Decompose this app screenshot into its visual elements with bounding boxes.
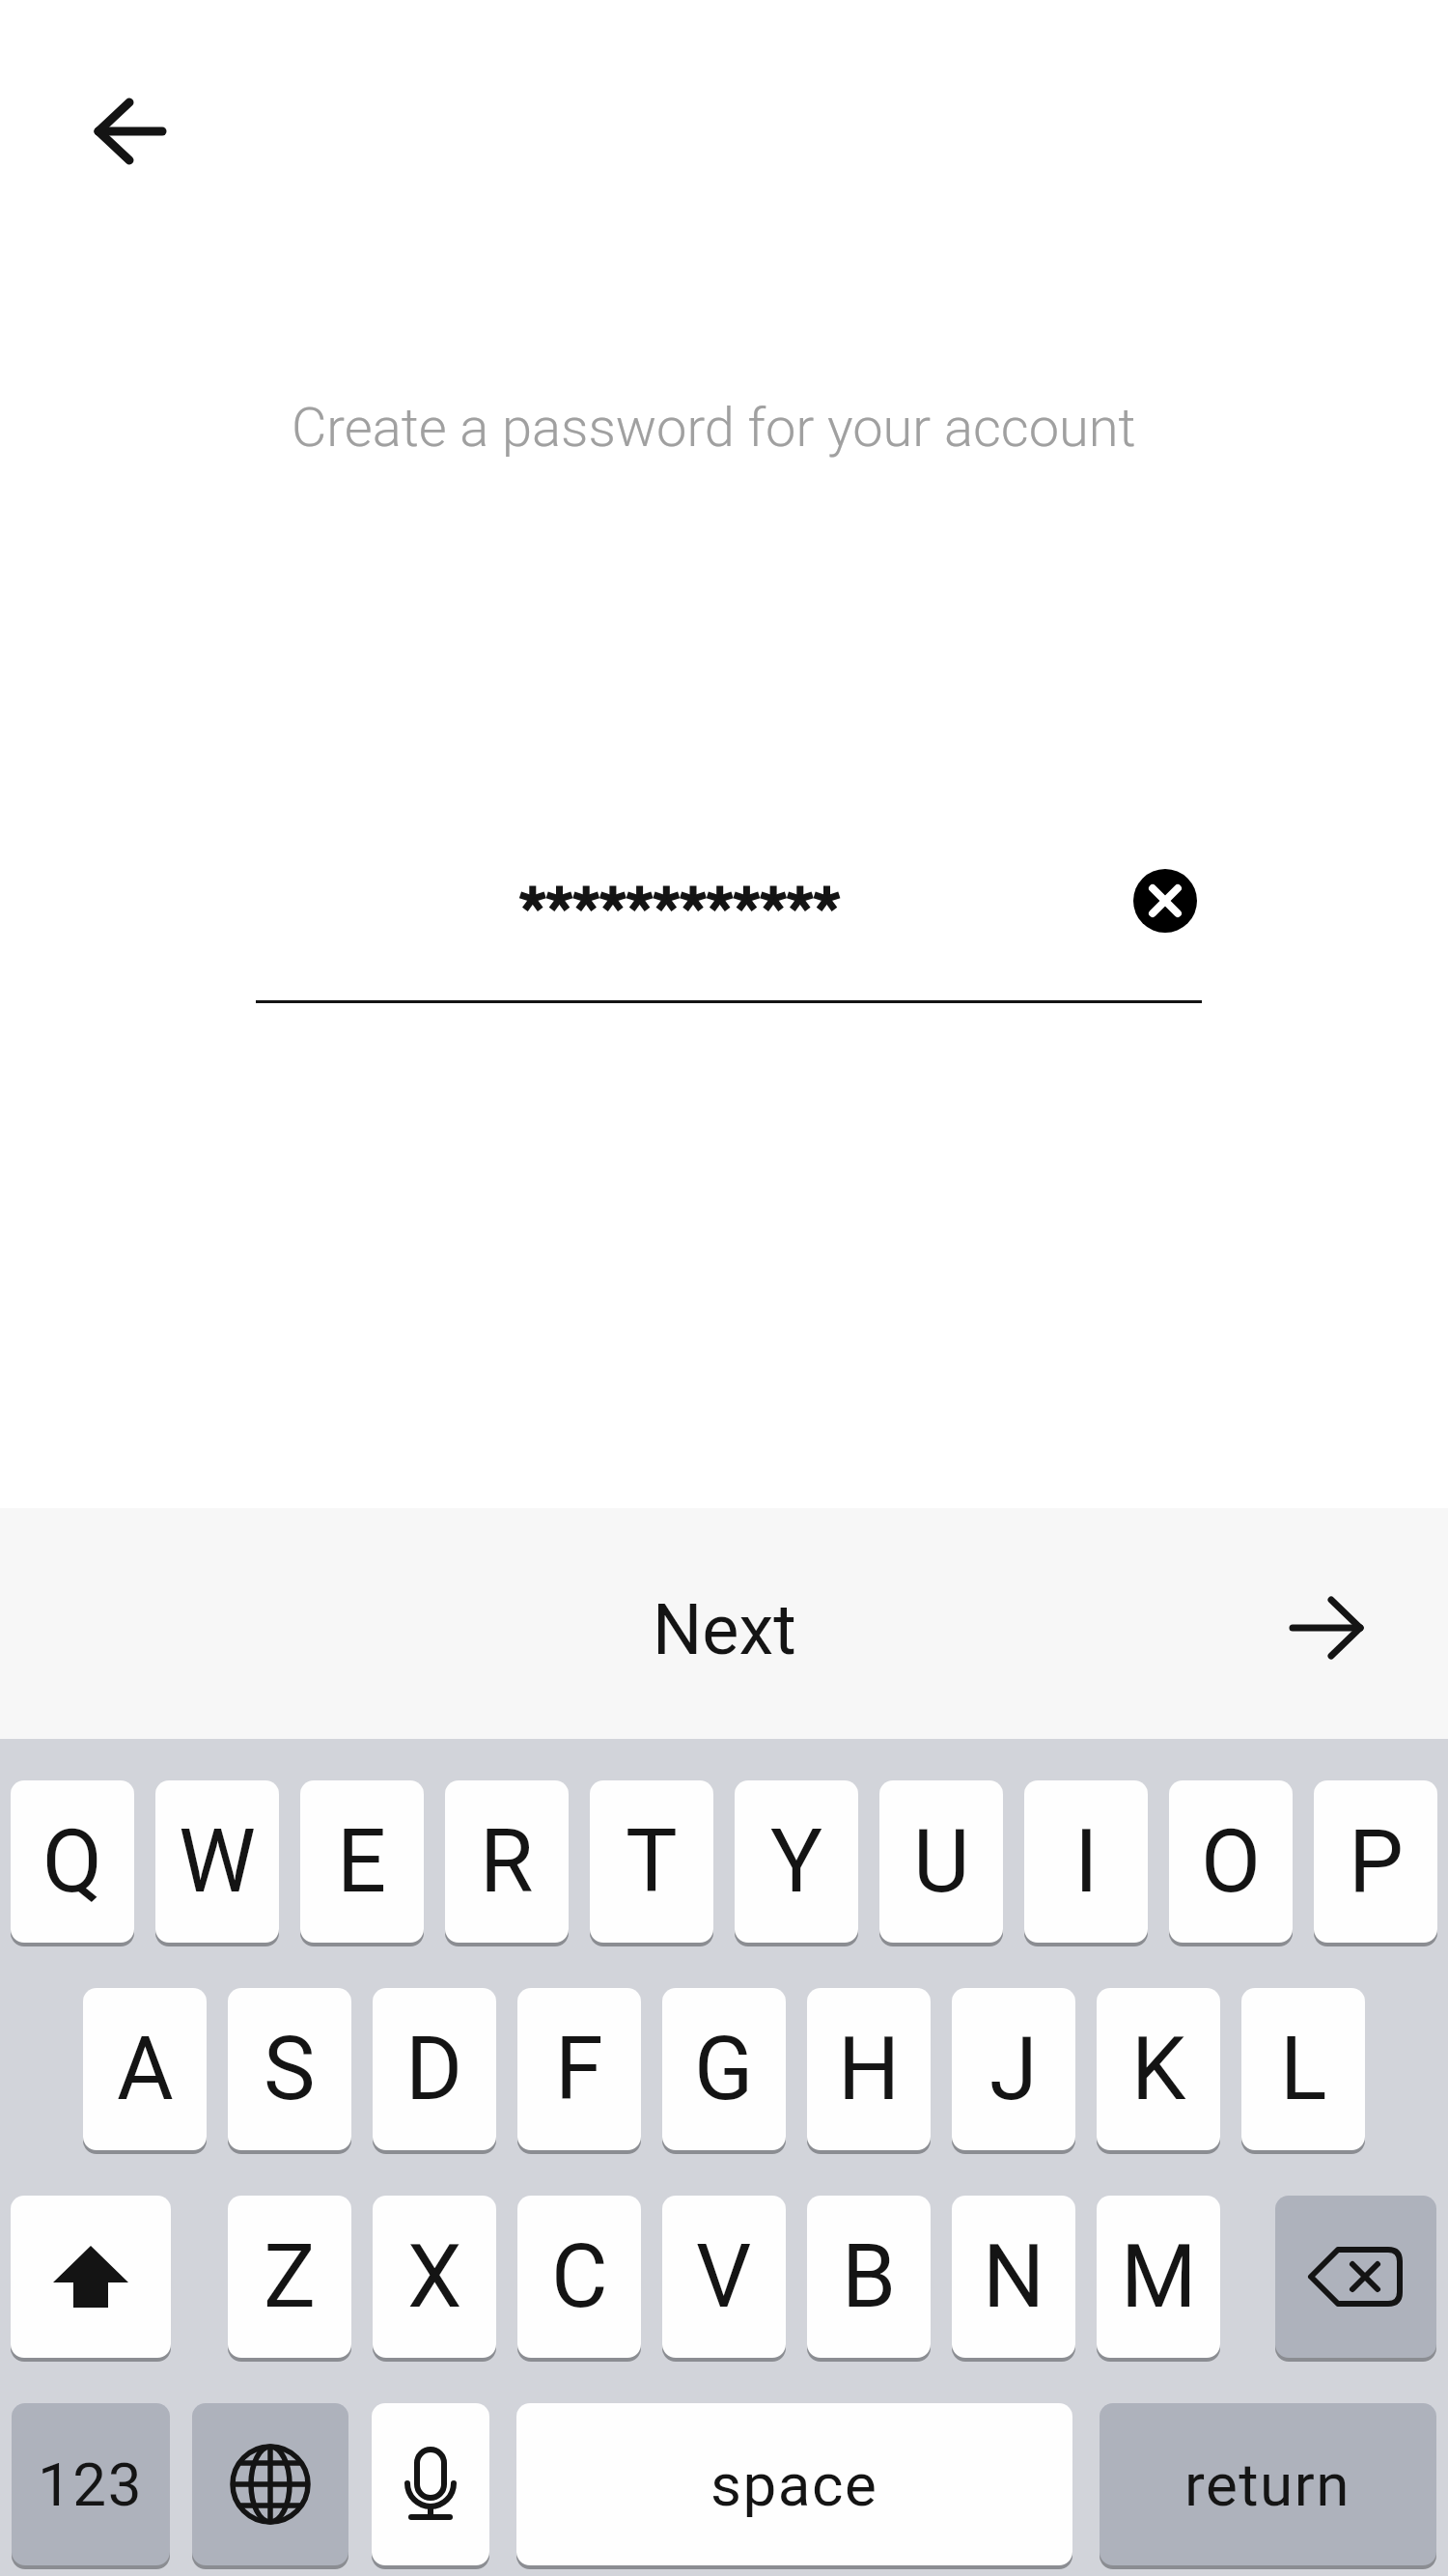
button[interactable]: E [300, 1780, 424, 1943]
staticText: M [1121, 2226, 1197, 2328]
button[interactable] [82, 87, 179, 176]
staticText: O [1201, 1811, 1261, 1913]
staticText: B [842, 2226, 897, 2328]
button[interactable]: C [517, 2196, 641, 2358]
staticText: space [710, 2450, 878, 2520]
staticText: L [1280, 2019, 1327, 2120]
staticText: Y [770, 1811, 823, 1913]
button[interactable]: T [590, 1780, 713, 1943]
button[interactable]: G [662, 1988, 786, 2150]
staticText: I [1074, 1811, 1099, 1913]
staticText: E [337, 1811, 387, 1913]
staticText: Q [42, 1811, 102, 1913]
staticText: V [696, 2226, 752, 2328]
button[interactable]: Y [735, 1780, 858, 1943]
staticText: C [551, 2226, 608, 2328]
button[interactable]: X [373, 2196, 496, 2358]
button[interactable]: J [952, 1988, 1075, 2150]
button[interactable]: H [807, 1988, 931, 2150]
staticText: N [983, 2226, 1045, 2328]
staticText: A [117, 2019, 174, 2120]
button[interactable]: P [1314, 1780, 1437, 1943]
button[interactable]: W [155, 1780, 279, 1943]
staticText: D [405, 2019, 463, 2120]
button[interactable] [1275, 2196, 1436, 2358]
button[interactable]: U [879, 1780, 1003, 1943]
staticText: K [1131, 2019, 1186, 2120]
button[interactable]: Z [228, 2196, 351, 2358]
staticText: P [1349, 1811, 1404, 1913]
button[interactable] [1260, 1560, 1395, 1695]
staticText: H [838, 2019, 901, 2120]
button[interactable]: O [1169, 1780, 1293, 1943]
button[interactable]: F [517, 1988, 641, 2150]
button[interactable]: M [1097, 2196, 1220, 2358]
staticText: G [694, 2019, 754, 2120]
staticText: J [989, 2019, 1038, 2120]
staticText: Create a password for your account [292, 396, 1136, 460]
staticText: Next [653, 1589, 796, 1670]
button[interactable]: I [1024, 1780, 1148, 1943]
button[interactable]: space [516, 2403, 1072, 2565]
button[interactable]: S [228, 1988, 351, 2150]
button[interactable]: R [445, 1780, 569, 1943]
staticText: return [1184, 2450, 1351, 2520]
staticText: T [626, 1811, 678, 1913]
staticText: F [555, 2019, 603, 2120]
button[interactable] [192, 2403, 348, 2565]
button[interactable]: Q [11, 1780, 134, 1943]
staticText: R [480, 1811, 534, 1913]
button[interactable]: Next [579, 1553, 869, 1707]
staticText: W [179, 1811, 256, 1913]
staticText: S [264, 2019, 316, 2120]
button[interactable]: K [1097, 1988, 1220, 2150]
staticText: 123 [38, 2450, 144, 2520]
button[interactable]: A [83, 1988, 207, 2150]
button[interactable]: B [807, 2196, 931, 2358]
button[interactable]: N [952, 2196, 1075, 2358]
button[interactable]: return [1100, 2403, 1436, 2565]
staticText: Z [264, 2226, 316, 2328]
button[interactable]: D [373, 1988, 496, 2150]
button[interactable]: L [1241, 1988, 1365, 2150]
button[interactable]: V [662, 2196, 786, 2358]
button[interactable] [372, 2403, 489, 2565]
staticText: X [407, 2226, 462, 2328]
button[interactable]: 123 [12, 2403, 170, 2565]
button[interactable] [11, 2196, 171, 2358]
staticText: U [913, 1811, 970, 1913]
button[interactable] [1133, 869, 1197, 933]
